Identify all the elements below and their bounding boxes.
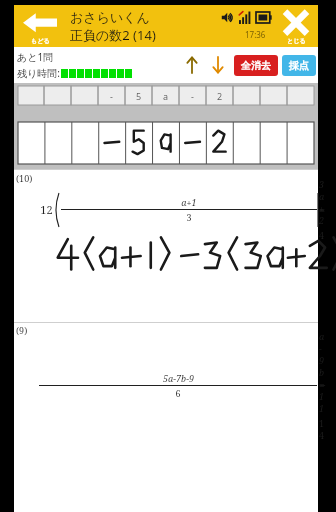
staticText: とじる xyxy=(287,37,306,45)
staticText: 5a−7b−9 xyxy=(163,372,194,384)
staticText: 17:36 xyxy=(245,29,266,40)
staticText: - xyxy=(191,90,194,102)
button[interactable] xyxy=(233,86,260,105)
staticText: あと1問 xyxy=(17,50,54,64)
staticText: (9) xyxy=(16,324,28,336)
staticText: 全消去 xyxy=(241,59,271,72)
button[interactable]: とじる xyxy=(274,5,318,47)
staticText: a+1 xyxy=(181,196,197,208)
staticText: - xyxy=(110,90,113,102)
button[interactable]: 次へ xyxy=(207,54,229,76)
staticText: 2 xyxy=(217,90,223,102)
staticText: 採点 xyxy=(289,59,309,72)
button[interactable]: 全消去 xyxy=(234,55,278,76)
button[interactable] xyxy=(287,86,314,105)
staticText: 3 xyxy=(186,211,192,223)
button[interactable]: (9) xyxy=(14,323,318,441)
staticText: 5 xyxy=(136,90,142,102)
staticText: 12 xyxy=(40,202,53,217)
staticText: もどる xyxy=(31,37,50,45)
button[interactable] xyxy=(71,86,98,105)
button[interactable]: 採点 xyxy=(282,55,316,76)
staticText: a xyxy=(163,90,169,102)
staticText: おさらいくん xyxy=(70,9,150,25)
button[interactable]: - xyxy=(179,86,206,105)
staticText: 正負の数2 (14) xyxy=(70,26,156,44)
button[interactable]: (10) xyxy=(14,170,318,322)
button[interactable]: 5 xyxy=(125,86,152,105)
staticText: (10) xyxy=(16,172,33,184)
button[interactable]: 前へ xyxy=(181,54,203,76)
button[interactable] xyxy=(260,86,287,105)
button[interactable]: - xyxy=(98,86,125,105)
staticText: 残り時間: xyxy=(17,66,60,80)
button[interactable]: 2 xyxy=(206,86,233,105)
button[interactable]: a xyxy=(152,86,179,105)
button[interactable] xyxy=(44,86,71,105)
button[interactable]: もどる xyxy=(14,5,66,47)
staticText: 6 xyxy=(175,387,181,399)
button[interactable] xyxy=(18,86,44,105)
